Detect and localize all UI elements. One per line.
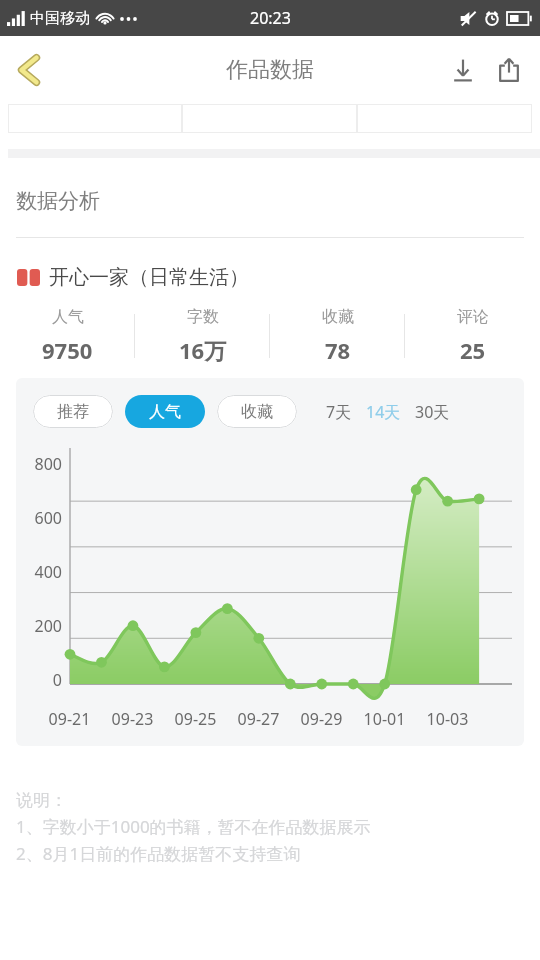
staticText: 20:23 — [250, 7, 291, 29]
staticText: 09-23 — [101, 708, 164, 730]
staticText: 800 — [16, 453, 62, 475]
staticText: 人气 — [52, 307, 84, 327]
staticText: 数据分析 — [16, 188, 100, 214]
button[interactable]: Back — [4, 45, 54, 95]
button[interactable]: 人气 — [125, 395, 205, 428]
staticText: 200 — [16, 615, 62, 637]
staticText: 10-01 — [353, 708, 416, 730]
button[interactable]: 推荐 — [33, 395, 113, 428]
staticText: 14天 — [366, 401, 401, 423]
staticText: 78 — [325, 335, 351, 365]
button[interactable]: 30天 — [412, 396, 453, 428]
button[interactable]: Download — [440, 47, 486, 93]
staticText: 1、字数小于1000的书籍，暂不在作品数据展示 — [16, 815, 371, 838]
staticText: 09-21 — [38, 708, 101, 730]
staticText: 10-03 — [416, 708, 479, 730]
staticText: 09-25 — [164, 708, 227, 730]
staticText: 9750 — [42, 335, 93, 365]
staticText: 30天 — [415, 401, 450, 423]
staticText: 收藏 — [322, 307, 354, 327]
staticText: 说明： — [16, 790, 67, 811]
staticText: 16万 — [179, 335, 227, 365]
button[interactable]: 7天 — [323, 396, 355, 428]
staticText: 25 — [460, 335, 486, 365]
staticText: 09-29 — [290, 708, 353, 730]
button[interactable]: 收藏 — [217, 395, 297, 428]
button[interactable]: 14天 — [363, 396, 404, 428]
staticText: 作品数据 — [226, 56, 314, 84]
staticText: 0 — [16, 669, 62, 691]
staticText: 600 — [16, 507, 62, 529]
staticText: 7天 — [326, 401, 352, 423]
staticText: 09-27 — [227, 708, 290, 730]
staticText: 字数 — [187, 307, 219, 327]
staticText: 人气 — [149, 402, 181, 422]
staticText: 2、8月1日前的作品数据暂不支持查询 — [16, 842, 301, 865]
staticText: 推荐 — [57, 402, 89, 422]
staticText: 评论 — [457, 307, 489, 327]
staticText: 400 — [16, 561, 62, 583]
staticText: 开心一家（日常生活） — [49, 265, 249, 290]
button[interactable]: Share — [486, 47, 532, 93]
staticText: 收藏 — [241, 402, 273, 422]
staticText: 中国移动 — [30, 9, 90, 28]
